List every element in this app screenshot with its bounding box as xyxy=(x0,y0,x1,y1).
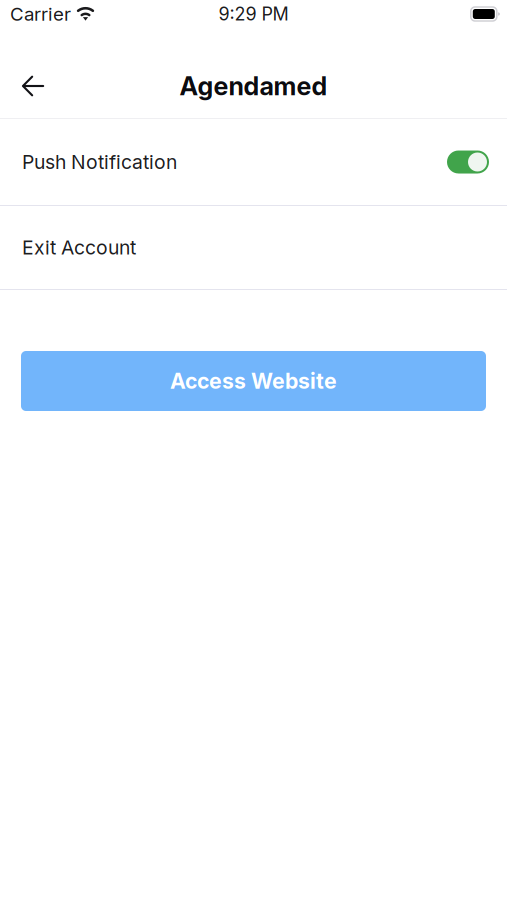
button[interactable]: Back xyxy=(11,64,55,108)
staticText: 9:29 PM xyxy=(218,3,288,25)
staticText: Push Notification xyxy=(22,150,177,174)
staticText: Access Website xyxy=(170,368,337,394)
staticText: Exit Account xyxy=(22,236,136,259)
button[interactable]: Access Website xyxy=(21,351,486,411)
staticText: Agendamed xyxy=(179,71,327,101)
button[interactable]: Push Notification, on xyxy=(447,150,489,173)
button[interactable]: Push Notification xyxy=(0,119,507,205)
staticText: Carrier xyxy=(10,3,71,25)
button[interactable]: Exit Account xyxy=(0,206,507,289)
